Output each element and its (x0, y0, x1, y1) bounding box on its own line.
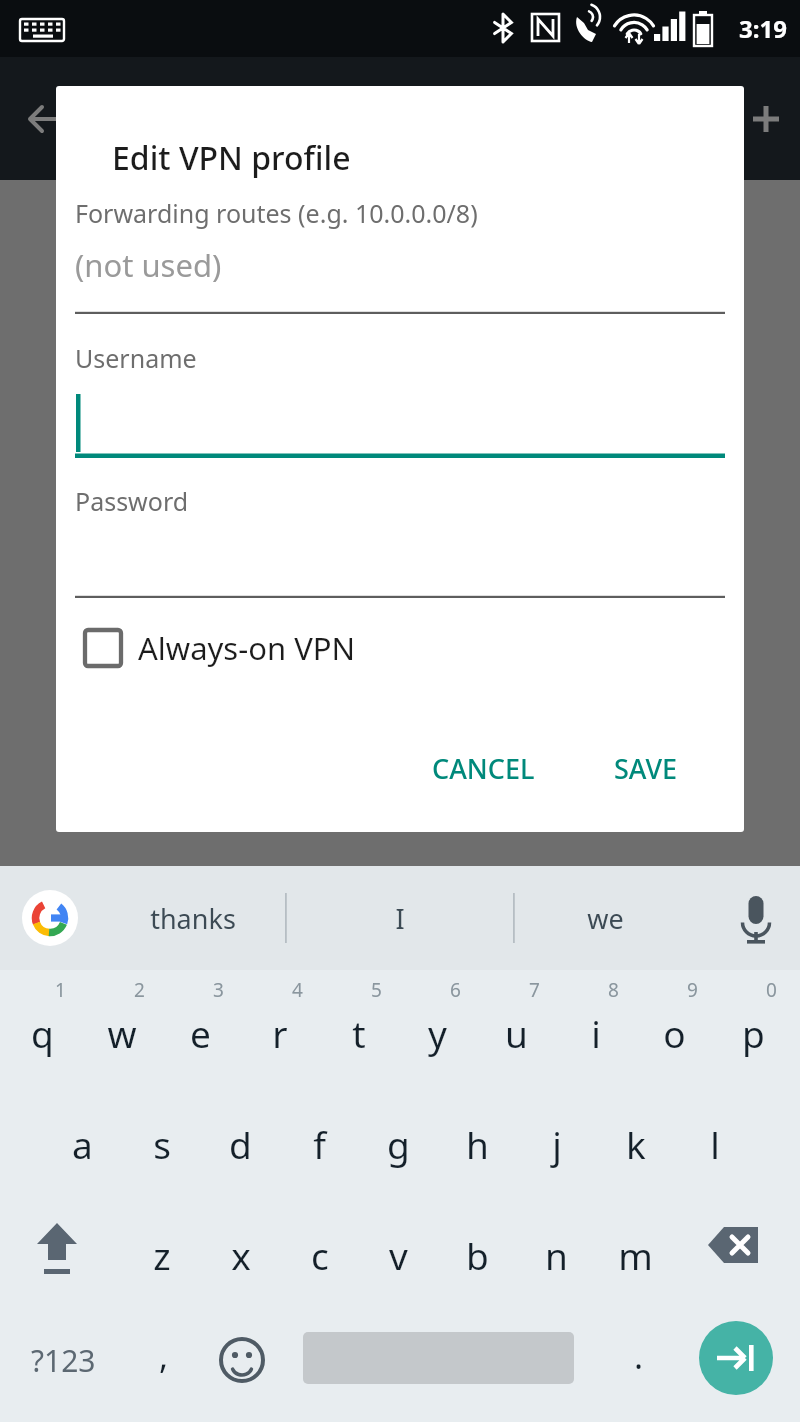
staticText: c (311, 1230, 329, 1280)
button[interactable]: Add profile (738, 91, 794, 147)
staticText: Password (75, 484, 189, 518)
staticText: Edit VPN profile (112, 136, 351, 180)
button[interactable]: I (287, 866, 512, 970)
staticText: y (428, 1008, 447, 1058)
staticText: u (505, 1008, 528, 1058)
staticText: 6 (450, 977, 461, 1003)
staticText: (not used) (75, 244, 222, 286)
button[interactable]: l (675, 1086, 754, 1190)
button[interactable]: s (122, 1086, 201, 1190)
staticText: i (591, 1008, 601, 1058)
button[interactable]: p (714, 975, 793, 1079)
button[interactable]: j (517, 1086, 596, 1190)
staticText: z (153, 1230, 171, 1280)
button[interactable]: (not used) (75, 238, 725, 314)
button[interactable]: SAVE (614, 750, 678, 787)
button[interactable]: k (596, 1086, 675, 1190)
staticText: d (229, 1119, 252, 1169)
staticText: h (466, 1119, 489, 1169)
button[interactable]: thanks (100, 866, 285, 970)
button[interactable]: Delete (686, 1197, 794, 1301)
staticText: e (190, 1008, 211, 1058)
button[interactable]: d (201, 1086, 280, 1190)
button[interactable]: ?123 (3, 1308, 123, 1412)
button[interactable]: o (635, 975, 714, 1079)
staticText: 3 (213, 977, 224, 1003)
staticText: q (31, 1008, 54, 1058)
staticText: , (159, 1333, 169, 1379)
button[interactable]: z (122, 1197, 201, 1301)
button[interactable]: f (280, 1086, 359, 1190)
button[interactable]: Emoji (205, 1308, 277, 1412)
button[interactable]: i (556, 975, 635, 1079)
staticText: f (313, 1119, 326, 1169)
button[interactable]: m (596, 1197, 675, 1301)
button[interactable]: r (240, 975, 319, 1079)
button[interactable]: Shift (3, 1197, 111, 1301)
staticText: Username (75, 341, 197, 375)
button[interactable]: g (359, 1086, 438, 1190)
button[interactable]: , (125, 1308, 203, 1412)
staticText: we (587, 900, 624, 937)
button[interactable]: c (280, 1197, 359, 1301)
button[interactable]: w (82, 975, 161, 1079)
staticText: thanks (150, 900, 236, 937)
button[interactable]: x (201, 1197, 280, 1301)
button[interactable]: u (477, 975, 556, 1079)
staticText: b (466, 1230, 489, 1280)
button[interactable]: Enter (699, 1321, 773, 1395)
staticText: 1 (55, 977, 66, 1003)
staticText: l (710, 1119, 720, 1169)
staticText: 7 (529, 977, 540, 1003)
staticText: Forwarding routes (e.g. 10.0.0.0/8) (75, 196, 478, 230)
button[interactable]: CANCEL (432, 750, 535, 787)
button[interactable]: b (438, 1197, 517, 1301)
staticText: v (389, 1230, 408, 1280)
button[interactable]: . (600, 1308, 678, 1412)
staticText: x (231, 1230, 251, 1280)
staticText: . (634, 1333, 644, 1379)
button[interactable]: a (43, 1086, 122, 1190)
staticText: CANCEL (432, 750, 535, 787)
button[interactable]: v (359, 1197, 438, 1301)
button[interactable]: we (515, 866, 695, 970)
staticText: 5 (371, 977, 382, 1003)
staticText: o (663, 1008, 686, 1058)
staticText: 0 (766, 977, 777, 1003)
button[interactable]: h (438, 1086, 517, 1190)
staticText: n (545, 1230, 568, 1280)
staticText: 9 (687, 977, 698, 1003)
button[interactable] (75, 526, 725, 598)
button[interactable]: y (398, 975, 477, 1079)
staticText: a (72, 1119, 93, 1169)
staticText: w (107, 1008, 137, 1058)
staticText: g (387, 1119, 410, 1169)
staticText: 4 (292, 977, 303, 1003)
staticText: t (352, 1008, 366, 1058)
staticText: 8 (608, 977, 619, 1003)
staticText: p (742, 1008, 765, 1058)
button[interactable]: Voice input (726, 888, 786, 948)
button[interactable]: Always-on VPN (80, 614, 356, 682)
staticText: I (395, 900, 405, 937)
button[interactable]: Back (16, 91, 72, 147)
staticText: 3:19 (739, 12, 787, 45)
button[interactable] (75, 382, 725, 458)
button[interactable]: n (517, 1197, 596, 1301)
button[interactable]: q (3, 975, 82, 1079)
staticText: SAVE (614, 750, 678, 787)
button[interactable]: e (161, 975, 240, 1079)
staticText: k (626, 1119, 646, 1169)
staticText: s (153, 1119, 171, 1169)
button[interactable]: t (319, 975, 398, 1079)
staticText: ?123 (31, 1340, 96, 1381)
staticText: r (272, 1008, 288, 1058)
staticText: m (618, 1230, 653, 1280)
staticText: j (552, 1119, 562, 1169)
staticText: 2 (134, 977, 145, 1003)
staticText: Always-on VPN (138, 627, 356, 669)
